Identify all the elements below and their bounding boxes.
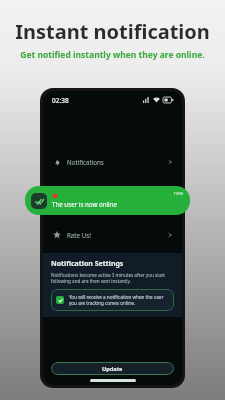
- button[interactable]: Rate Us!: [43, 226, 182, 243]
- staticText: 02:38: [52, 96, 69, 105]
- staticText: Get notified instantly when they are onl…: [20, 49, 205, 61]
- button[interactable]: Update: [51, 362, 174, 375]
- staticText: The user is now online: [52, 200, 117, 208]
- staticText: Help: [67, 201, 81, 209]
- staticText: now: [174, 190, 184, 196]
- button[interactable]: The user is now online: [25, 186, 190, 215]
- staticText: Notification Settings: [51, 259, 124, 269]
- button[interactable]: Notifications: [43, 153, 182, 170]
- staticText: Notifications become active 3 minutes af…: [51, 272, 174, 284]
- staticText: Update: [102, 365, 123, 373]
- staticText: Instant notification: [15, 18, 210, 45]
- staticText: Rate Us!: [67, 231, 91, 239]
- button[interactable]: Help: [43, 196, 182, 213]
- staticText: Notifications: [67, 158, 104, 166]
- button[interactable]: You will receive a notification when the…: [51, 289, 174, 311]
- staticText: You will receive a notification when the…: [69, 294, 169, 306]
